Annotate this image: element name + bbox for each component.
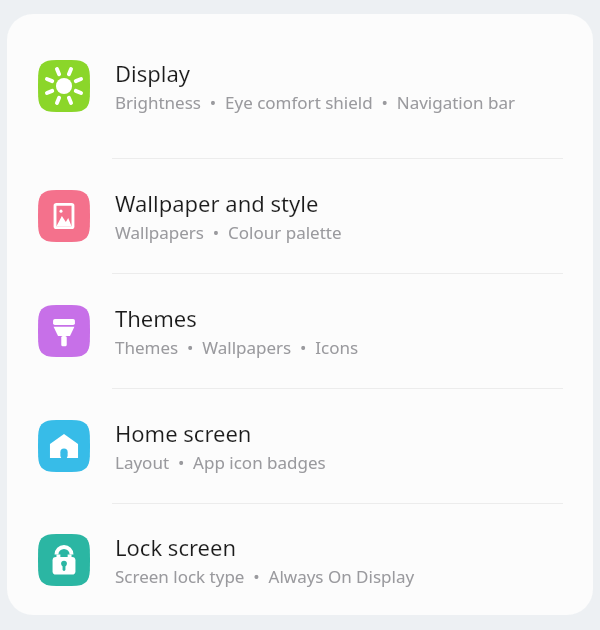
staticText: Wallpapers • Colour palette (115, 221, 342, 244)
staticText: Layout • App icon badges (115, 451, 326, 474)
button[interactable]: Display (7, 14, 593, 158)
other: Home screen (38, 420, 90, 472)
button[interactable]: Themes (7, 273, 593, 388)
button[interactable]: Home screen (7, 388, 593, 503)
button[interactable]: Lock screen (7, 503, 593, 615)
other: Lock screen (38, 534, 90, 586)
staticText: Wallpaper and style (115, 188, 319, 218)
other: Themes (38, 305, 90, 357)
staticText: Themes (115, 303, 197, 333)
staticText: Brightness • Eye comfort shield • Naviga… (115, 91, 515, 114)
staticText: Display (115, 58, 191, 88)
staticText: Screen lock type • Always On Display (115, 565, 415, 588)
other: Wallpaper and style (38, 190, 90, 242)
staticText: Lock screen (115, 532, 237, 562)
staticText: Themes • Wallpapers • Icons (115, 336, 359, 359)
staticText: Home screen (115, 418, 252, 448)
other: Display (38, 60, 90, 112)
button[interactable]: Wallpaper and style (7, 158, 593, 273)
